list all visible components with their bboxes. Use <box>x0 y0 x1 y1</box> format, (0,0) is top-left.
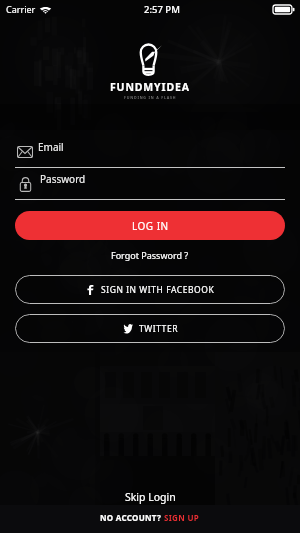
button[interactable]: SIGN IN WITH FACEBOOK <box>15 275 285 304</box>
staticText: TWITTER <box>139 323 178 335</box>
staticText: LOG IN <box>132 219 169 233</box>
button[interactable]: SIGN UP <box>164 512 200 523</box>
staticText: FUNDING IN A FLASH <box>124 95 177 100</box>
button[interactable]: TWITTER <box>15 314 285 343</box>
staticText: Email <box>38 140 64 154</box>
button[interactable]: Skip Login <box>125 490 176 504</box>
staticText: SIGN IN WITH FACEBOOK <box>101 284 215 296</box>
button[interactable]: Forgot Password ? <box>111 249 189 261</box>
staticText: Password <box>40 172 86 186</box>
staticText: NO ACCOUNT? <box>100 512 164 523</box>
staticText: Carrier <box>6 3 36 15</box>
button[interactable]: LOG IN <box>15 211 285 240</box>
staticText: 2:57 PM <box>144 3 180 16</box>
staticText: FUNDMYIDEA <box>110 80 190 94</box>
